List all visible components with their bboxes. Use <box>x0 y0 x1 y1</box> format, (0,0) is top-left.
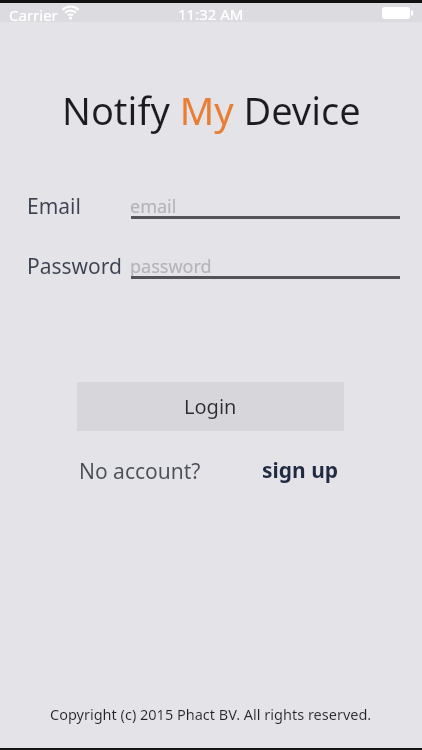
button[interactable]: sign up <box>258 452 343 489</box>
staticText: No account? <box>79 457 201 486</box>
staticText: Carrier <box>9 5 58 25</box>
staticText: Email <box>27 192 81 221</box>
button[interactable]: Login <box>77 382 344 431</box>
staticText: Copyright (c) 2015 Phact BV. All rights … <box>50 704 372 724</box>
staticText: 11:32 AM <box>178 4 244 24</box>
staticText: Login <box>184 393 237 420</box>
staticText: email <box>130 194 177 219</box>
staticText: Notify My Device <box>62 84 361 136</box>
staticText: sign up <box>262 456 339 485</box>
staticText: password <box>130 254 212 279</box>
staticText: Password <box>27 252 122 281</box>
